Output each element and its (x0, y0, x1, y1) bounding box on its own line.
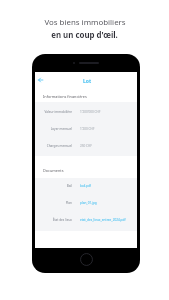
staticText: Bail (66, 184, 72, 188)
button[interactable]: Valeur immobilière (35, 103, 137, 120)
staticText: Plan (65, 201, 72, 205)
button[interactable]: État des lieux (35, 211, 137, 228)
staticText: Charges mensuel (46, 144, 72, 148)
button[interactable]: Plan (35, 194, 137, 211)
button[interactable]: Back (37, 76, 45, 84)
staticText: Valeur immobilière (44, 110, 72, 114)
button[interactable]: Charges mensuel (35, 137, 137, 154)
staticText: Documents (43, 168, 64, 173)
button[interactable]: Bail (35, 177, 137, 194)
button[interactable]: Loyer mensuel (35, 120, 137, 137)
staticText: bail.pdf (80, 184, 91, 188)
staticText: Informations financières (43, 94, 87, 99)
staticText: 1'200 CHF (80, 127, 95, 131)
staticText: Vos biens immobiliers (44, 17, 126, 28)
staticText: État des lieux (52, 218, 72, 222)
staticText: Loyer mensuel (50, 127, 72, 131)
staticText: en un coup d'œil. (51, 30, 118, 41)
staticText: 250 CHF (80, 144, 92, 148)
staticText: etat_des_lieux_entree_2024.pdf (80, 218, 126, 222)
staticText: plan_01.jpg (80, 201, 97, 205)
staticText: 1'200'000 CHF (80, 110, 101, 114)
button[interactable]: Lot (83, 78, 92, 85)
